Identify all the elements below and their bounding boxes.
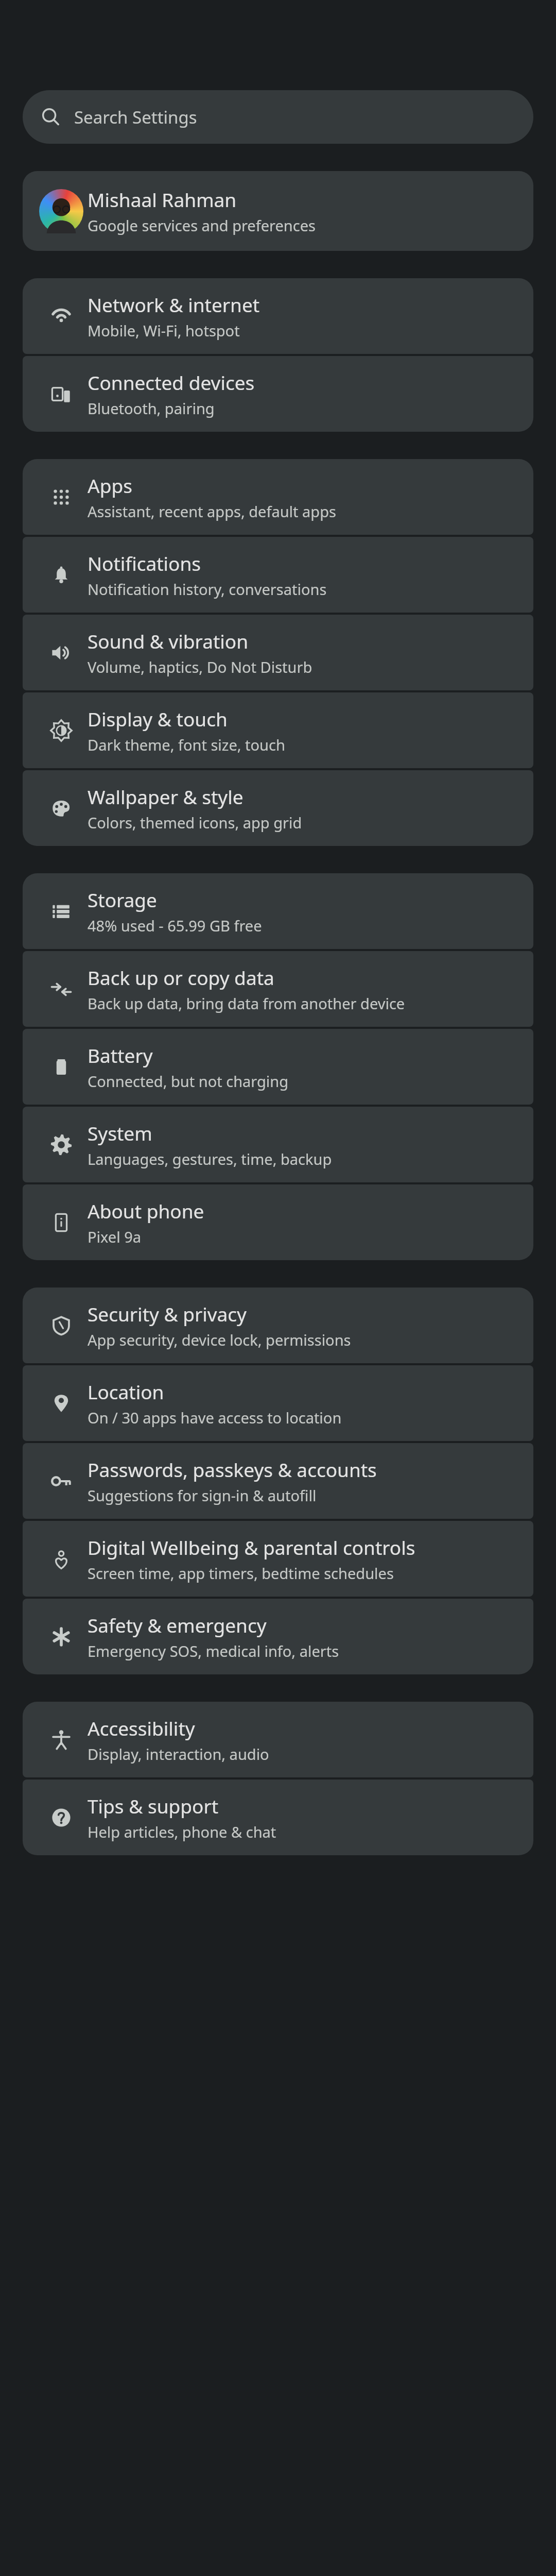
staticText: Search Settings [74,106,197,129]
staticText: Bluetooth, pairing [88,398,215,418]
staticText: Location [88,1379,164,1404]
staticText: About phone [88,1198,204,1224]
button[interactable]: About phone [23,1184,533,1260]
staticText: On / 30 apps have access to location [88,1408,342,1428]
button[interactable]: Safety & emergency [23,1599,533,1674]
button[interactable]: Tips & support [23,1780,533,1855]
button[interactable]: Search Settings [23,90,533,144]
button[interactable]: Battery [23,1029,533,1105]
button[interactable]: Mishaal Rahman [23,171,533,251]
staticText: Connected, but not charging [88,1071,289,1091]
staticText: Colors, themed icons, app grid [88,812,302,833]
button[interactable]: Back up or copy data [23,951,533,1027]
staticText: System [88,1120,152,1146]
button[interactable]: Wallpaper & style [23,770,533,846]
staticText: Notifications [88,550,201,576]
staticText: Safety & emergency [88,1612,267,1638]
button[interactable]: Location [23,1365,533,1441]
staticText: Back up or copy data [88,964,274,990]
button[interactable]: System [23,1107,533,1182]
button[interactable]: Network & internet [23,278,533,354]
staticText: Display, interaction, audio [88,1744,269,1764]
button[interactable]: Storage [23,873,533,949]
staticText: Apps [88,472,132,498]
button[interactable]: Display & touch [23,692,533,768]
button[interactable]: Accessibility [23,1702,533,1777]
staticText: Security & privacy [88,1301,247,1327]
staticText: Display & touch [88,706,228,732]
staticText: 48% used - 65.99 GB free [88,916,262,936]
staticText: Help articles, phone & chat [88,1822,276,1842]
staticText: Wallpaper & style [88,784,244,809]
button[interactable]: Notifications [23,537,533,613]
staticText: Languages, gestures, time, backup [88,1149,332,1169]
staticText: Digital Wellbeing & parental controls [88,1534,415,1560]
staticText: Tips & support [88,1793,219,1819]
staticText: Emergency SOS, medical info, alerts [88,1641,339,1661]
button[interactable]: Security & privacy [23,1287,533,1363]
button[interactable]: Sound & vibration [23,615,533,690]
staticText: Assistant, recent apps, default apps [88,501,336,521]
staticText: Volume, haptics, Do Not Disturb [88,657,312,677]
staticText: Connected devices [88,369,255,395]
button[interactable]: Connected devices [23,356,533,432]
staticText: Pixel 9a [88,1227,142,1247]
button[interactable]: Passwords, passkeys & accounts [23,1443,533,1519]
staticText: Sound & vibration [88,628,249,654]
staticText: Google services and preferences [88,215,316,235]
staticText: Screen time, app timers, bedtime schedul… [88,1563,394,1583]
button[interactable]: Digital Wellbeing & parental controls [23,1521,533,1597]
staticText: Battery [88,1042,153,1068]
staticText: Accessibility [88,1715,195,1741]
staticText: Mobile, Wi-Fi, hotspot [88,320,240,341]
staticText: Dark theme, font size, touch [88,735,285,755]
staticText: Passwords, passkeys & accounts [88,1456,377,1482]
staticText: App security, device lock, permissions [88,1330,351,1350]
staticText: Notification history, conversations [88,579,327,599]
staticText: Suggestions for sign-in & autofill [88,1485,317,1505]
staticText: Network & internet [88,292,260,317]
button[interactable]: Apps [23,459,533,535]
staticText: Back up data, bring data from another de… [88,993,405,1013]
staticText: Mishaal Rahman [88,187,237,212]
staticText: Storage [88,887,157,912]
